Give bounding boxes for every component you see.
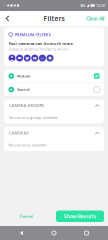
button[interactable]: CAMERA GROUPS xyxy=(4,100,104,112)
button[interactable]: Recents xyxy=(75,226,97,240)
staticText: Show Results xyxy=(63,213,96,220)
button[interactable]: Sound xyxy=(4,83,104,96)
button[interactable]: Show Results xyxy=(56,210,104,222)
staticText: PREMIUM FILTERS xyxy=(14,32,50,37)
staticText: Motion xyxy=(17,73,31,79)
staticText: No cameras available xyxy=(8,142,46,148)
button[interactable]: Back xyxy=(10,226,32,240)
button[interactable]: Home xyxy=(43,226,65,240)
staticText: 4G xyxy=(80,3,85,8)
staticText: CAMERAS xyxy=(8,130,28,136)
staticText: No camera groups available xyxy=(8,115,57,120)
staticText: Your cameras can do much more. xyxy=(8,41,73,46)
button[interactable]: Back xyxy=(0,11,15,26)
button[interactable]: Cancel xyxy=(4,210,48,222)
staticText: 12:30 xyxy=(96,3,105,8)
button[interactable]: Clear All xyxy=(86,11,108,26)
staticText: Clear All xyxy=(86,15,104,22)
button[interactable]: CAMERAS xyxy=(4,127,104,139)
button[interactable]: Motion xyxy=(4,70,104,83)
staticText: Cancel xyxy=(19,214,32,219)
staticText: Sound xyxy=(17,87,29,92)
staticText: ··· xyxy=(3,3,6,8)
staticText: Filters xyxy=(43,14,64,23)
staticText: CAMERA GROUPS xyxy=(8,103,43,108)
staticText: Recognize everything from faces to vehic… xyxy=(8,48,69,51)
